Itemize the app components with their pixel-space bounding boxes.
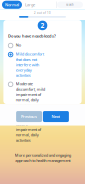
- button[interactable]: Normal: [2, 1, 22, 9]
- staticText: Do you have nosebleeds?: [8, 33, 56, 38]
- staticText: Previous: [21, 114, 37, 119]
- staticText: Large: [25, 2, 35, 7]
- staticText: More personalized and engaging approach …: [14, 152, 70, 163]
- button[interactable]: Large: [22, 1, 38, 9]
- staticText: Next: [51, 114, 60, 119]
- staticText: 2: [40, 21, 44, 30]
- staticText: 2 out of 10: [34, 11, 51, 15]
- staticText: search: [66, 3, 74, 6]
- button[interactable]: Mild discomfort that does not interfere …: [8, 50, 77, 79]
- button[interactable]: Previous: [16, 111, 42, 122]
- staticText: Severe discomfort, severe impairment of …: [16, 111, 41, 143]
- staticText: Mild discomfort that does not interfere …: [16, 51, 44, 78]
- button[interactable]: No: [8, 41, 77, 49]
- button[interactable]: Severe discomfort, severe impairment of …: [8, 110, 77, 144]
- button[interactable]: Search: [57, 1, 83, 8]
- button[interactable]: Next: [43, 111, 69, 122]
- staticText: Normal: [5, 2, 19, 7]
- staticText: Moderate discomfort, mild impairment of …: [16, 81, 45, 108]
- button[interactable]: Moderate discomfort, mild impairment of …: [8, 80, 77, 109]
- staticText: No: [16, 42, 21, 48]
